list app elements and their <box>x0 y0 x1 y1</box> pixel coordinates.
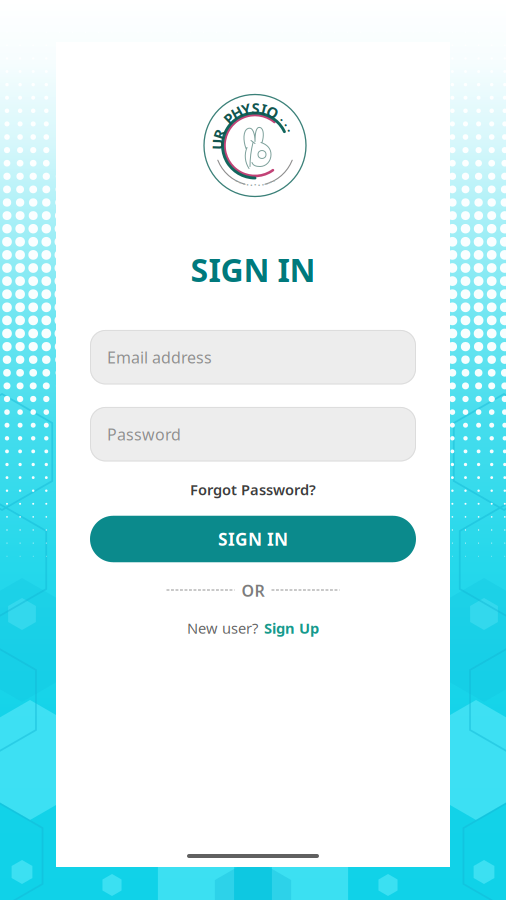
staticText: · <box>288 122 291 138</box>
staticText: SIGN IN <box>218 527 288 550</box>
staticText: · <box>253 179 256 192</box>
staticText: I <box>261 99 267 119</box>
staticText: · <box>238 176 241 189</box>
staticText: · <box>235 175 238 187</box>
staticText: O <box>267 103 279 122</box>
button[interactable]: Password <box>90 407 416 461</box>
button[interactable]: SIGN IN <box>90 516 416 562</box>
button[interactable]: Forgot Password? <box>182 476 324 503</box>
staticText: U <box>212 134 223 154</box>
staticText: · <box>269 176 272 189</box>
staticText: P <box>224 109 233 128</box>
staticText: · <box>242 178 245 190</box>
staticText: Y <box>241 99 250 119</box>
staticText: · <box>257 179 260 191</box>
staticText: · <box>280 111 283 127</box>
staticText: Sign Up <box>264 618 319 638</box>
staticText: R <box>214 124 224 144</box>
staticText: Email address <box>107 347 212 368</box>
staticText: · <box>261 178 264 191</box>
button[interactable]: New user? <box>179 614 327 642</box>
staticText: · <box>265 178 268 190</box>
staticText: · <box>250 179 253 191</box>
staticText: H <box>231 103 242 122</box>
staticText: Forgot Password? <box>190 480 316 499</box>
staticText: Password <box>107 424 181 445</box>
staticText: S <box>252 98 260 118</box>
button[interactable]: Email address <box>90 330 416 384</box>
staticText: SIGN IN <box>190 248 315 291</box>
staticText: · <box>246 178 249 191</box>
staticText: New user? <box>187 618 258 638</box>
staticText: OR <box>241 580 264 601</box>
staticText: · <box>272 175 275 187</box>
staticText: · <box>285 117 288 132</box>
